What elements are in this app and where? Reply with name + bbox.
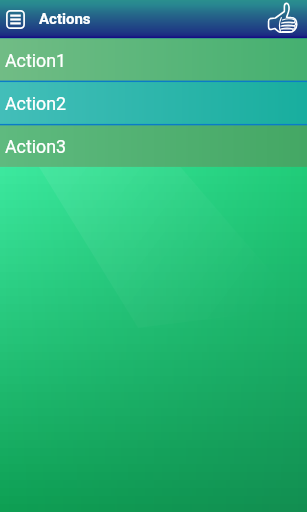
staticText: Action3 <box>5 136 67 157</box>
button[interactable]: Open navigation menu <box>6 10 25 29</box>
button[interactable]: Action3 <box>0 124 307 167</box>
button[interactable]: Action1 <box>0 38 307 81</box>
button[interactable]: Like <box>267 2 298 36</box>
staticText: Action2 <box>5 93 67 114</box>
staticText: Action1 <box>5 50 67 71</box>
button[interactable]: Action2 <box>0 81 307 124</box>
staticText: Actions <box>39 10 91 28</box>
